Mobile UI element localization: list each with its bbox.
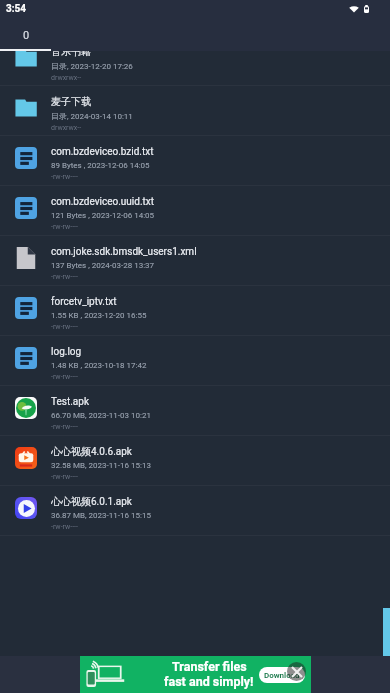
staticText: 66.70 MB, 2023-11-03 10:21	[51, 411, 151, 420]
staticText: -rw-rw----	[51, 423, 78, 431]
staticText: com.bzdeviceo.bzid.txt	[51, 146, 154, 158]
staticText: Transfer files	[172, 659, 247, 674]
staticText: forcetv_iptv.txt	[51, 296, 117, 308]
staticText: 麦子下载	[51, 95, 91, 108]
button[interactable]: 心心视频6.0.1.apk	[0, 486, 390, 536]
staticText: 89 Bytes , 2023-12-06 14:05	[51, 161, 150, 170]
staticText: 1.48 KB , 2023-10-18 17:42	[51, 361, 147, 370]
button[interactable]: com.joke.sdk.bmsdk_users1.xml	[0, 236, 390, 286]
staticText: 0	[23, 29, 30, 42]
staticText: 1.55 KB , 2023-12-20 16:55	[51, 311, 147, 320]
staticText: -rw-rw----	[51, 523, 78, 531]
staticText: 32.58 MB, 2023-11-16 15:13	[51, 461, 151, 470]
button[interactable]: com.bzdeviceo.bzid.txt	[0, 136, 390, 186]
staticText: -rw-rw----	[51, 273, 78, 281]
staticText: Download	[264, 671, 300, 680]
button[interactable]: 0	[0, 18, 51, 51]
button[interactable]: com.bzdeviceo.uuid.txt	[0, 186, 390, 236]
staticText: 心心视频4.0.6.apk	[51, 445, 132, 458]
staticText: -rw-rw----	[51, 323, 78, 331]
staticText: log.log	[51, 346, 82, 358]
staticText: 36.87 MB, 2023-11-16 15:15	[51, 511, 151, 520]
staticText: -rw-rw----	[51, 473, 78, 481]
staticText: drwxrwx--	[51, 74, 82, 82]
staticText: -rw-rw----	[51, 373, 78, 381]
button[interactable]: Download	[259, 667, 305, 683]
button[interactable]: Transfer files	[80, 656, 311, 693]
staticText: 心心视频6.0.1.apk	[51, 495, 132, 508]
staticText: 音乐书籍	[51, 51, 91, 58]
button[interactable]: Close ad	[287, 662, 306, 681]
button[interactable]: log.log	[0, 336, 390, 386]
staticText: -rw-rw----	[51, 223, 78, 231]
staticText: com.bzdeviceo.uuid.txt	[51, 196, 155, 208]
button[interactable]: 心心视频4.0.6.apk	[0, 436, 390, 486]
staticText: drwxrwx--	[51, 124, 82, 132]
staticText: -rw-rw----	[51, 173, 78, 181]
staticText: com.joke.sdk.bmsdk_users1.xml	[51, 246, 197, 258]
staticText: Test.apk	[51, 396, 89, 408]
staticText: 121 Bytes , 2023-12-06 14:05	[51, 211, 155, 220]
staticText: 目录, 2023-12-20 17:26	[51, 61, 133, 71]
staticText: 3:54	[6, 3, 27, 15]
button[interactable]: forcetv_iptv.txt	[0, 286, 390, 336]
staticText: 137 Bytes , 2024-03-28 13:37	[51, 261, 155, 270]
button[interactable]: 麦子下载	[0, 86, 390, 136]
staticText: fast and simply!	[164, 674, 254, 689]
button[interactable]: Test.apk	[0, 386, 390, 436]
button[interactable]: 音乐书籍	[0, 51, 390, 86]
staticText: 目录, 2024-03-14 10:11	[51, 111, 133, 121]
